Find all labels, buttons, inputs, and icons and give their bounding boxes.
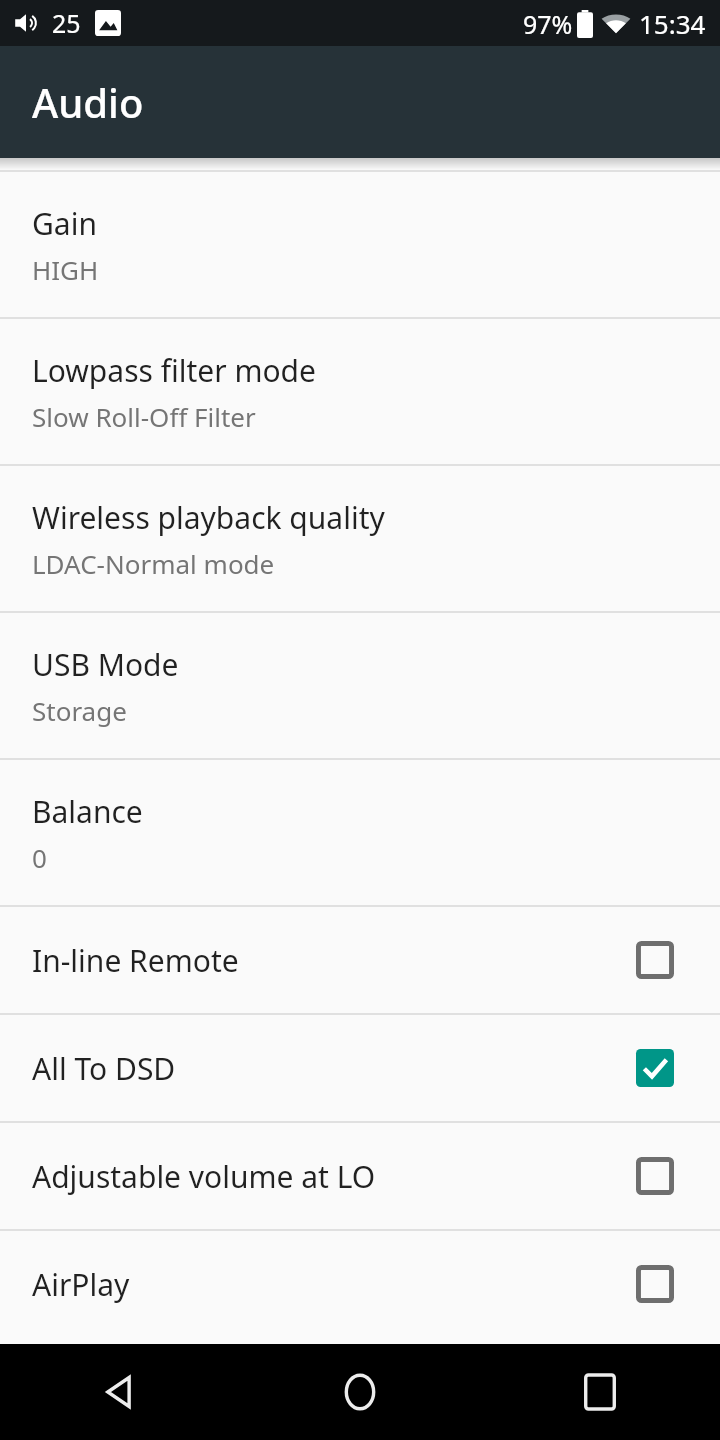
staticText: All To DSD (32, 1048, 636, 1089)
staticText: USB Mode (32, 644, 179, 685)
button[interactable]: All To DSD (0, 1015, 720, 1121)
staticText: Balance (32, 791, 143, 832)
staticText: Slow Roll-Off Filter (32, 399, 256, 434)
button[interactable]: AirPlay (0, 1231, 720, 1337)
button[interactable]: Lowpass filter mode (0, 319, 720, 464)
staticText: Storage (32, 693, 127, 728)
staticText: 97% (523, 7, 573, 41)
staticText: In-line Remote (32, 940, 636, 981)
button[interactable]: Wireless playback quality (0, 466, 720, 611)
staticText: 25 (52, 6, 81, 40)
staticText: HIGH (32, 252, 99, 287)
button[interactable]: Balance (0, 760, 720, 905)
button[interactable]: In-line Remote (0, 907, 720, 1013)
staticText: Gain (32, 203, 97, 244)
button[interactable]: Back (0, 1344, 240, 1440)
button[interactable]: Home (240, 1344, 480, 1440)
staticText: 0 (32, 840, 47, 875)
button[interactable]: Gain (0, 172, 720, 317)
staticText: AirPlay (32, 1264, 636, 1305)
staticText: LDAC-Normal mode (32, 546, 275, 581)
staticText: 15:34 (639, 6, 706, 41)
button[interactable]: Recent apps (480, 1344, 720, 1440)
staticText: Wireless playback quality (32, 497, 385, 538)
staticText: Audio (32, 75, 144, 129)
staticText: Adjustable volume at LO (32, 1156, 636, 1197)
button[interactable]: Adjustable volume at LO (0, 1123, 720, 1229)
button[interactable]: USB Mode (0, 613, 720, 758)
staticText: Lowpass filter mode (32, 350, 316, 391)
